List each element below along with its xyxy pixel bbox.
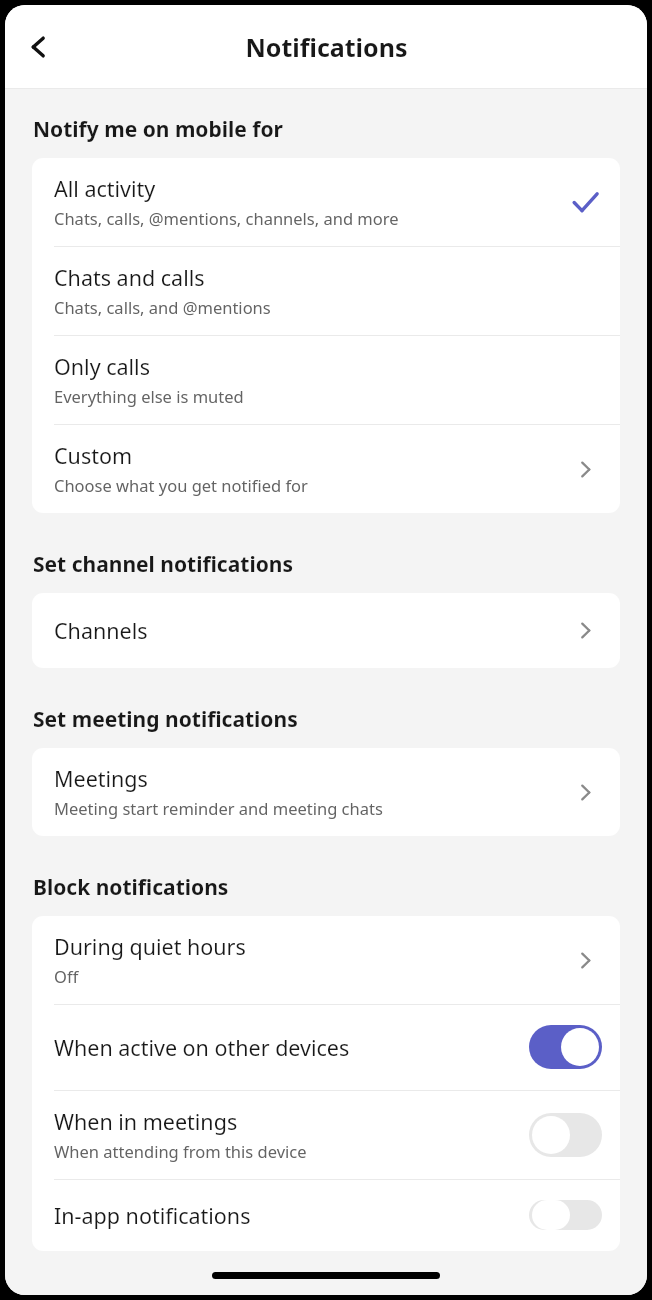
staticText: Notify me on mobile for: [33, 115, 283, 144]
button[interactable]: In-app notifications: [32, 1180, 620, 1251]
other: Selected: [568, 185, 602, 219]
staticText: Meeting start reminder and meeting chats: [54, 797, 383, 819]
button[interactable]: When in meetings: [32, 1091, 620, 1179]
staticText: Only calls: [54, 352, 150, 381]
staticText: Custom: [54, 441, 133, 470]
staticText: In-app notifications: [54, 1201, 521, 1230]
button[interactable]: During quiet hours: [32, 916, 620, 1004]
button[interactable]: Chats and calls: [32, 247, 620, 335]
other: Open: [568, 775, 602, 809]
button[interactable]: Off: [529, 1200, 602, 1230]
staticText: Chats and calls: [54, 263, 205, 292]
staticText: During quiet hours: [54, 932, 246, 961]
staticText: Meetings: [54, 764, 148, 793]
staticText: Set meeting notifications: [33, 705, 298, 734]
button[interactable]: Off: [529, 1113, 602, 1157]
staticText: Notifications: [245, 30, 408, 64]
staticText: Chats, calls, @mentions, channels, and m…: [54, 207, 399, 229]
button[interactable]: On: [529, 1025, 602, 1069]
staticText: When attending from this device: [54, 1140, 307, 1162]
button[interactable]: Channels: [32, 593, 620, 668]
other: Open: [568, 943, 602, 977]
button[interactable]: All activity: [32, 158, 620, 246]
other: Open: [568, 452, 602, 486]
staticText: Block notifications: [33, 873, 229, 902]
staticText: All activity: [54, 174, 156, 203]
staticText: Everything else is muted: [54, 385, 244, 407]
staticText: When active on other devices: [54, 1033, 521, 1062]
staticText: Chats, calls, and @mentions: [54, 296, 271, 318]
button[interactable]: Only calls: [32, 336, 620, 424]
staticText: When in meetings: [54, 1107, 238, 1136]
button[interactable]: When active on other devices: [32, 1005, 620, 1090]
button[interactable]: Custom: [32, 425, 620, 513]
button[interactable]: Meetings: [32, 748, 620, 836]
staticText: Choose what you get notified for: [54, 474, 308, 496]
staticText: Channels: [54, 616, 560, 645]
staticText: Off: [54, 965, 79, 987]
button[interactable]: Back: [13, 21, 65, 73]
other: Open: [568, 613, 602, 647]
staticText: Set channel notifications: [33, 550, 293, 579]
